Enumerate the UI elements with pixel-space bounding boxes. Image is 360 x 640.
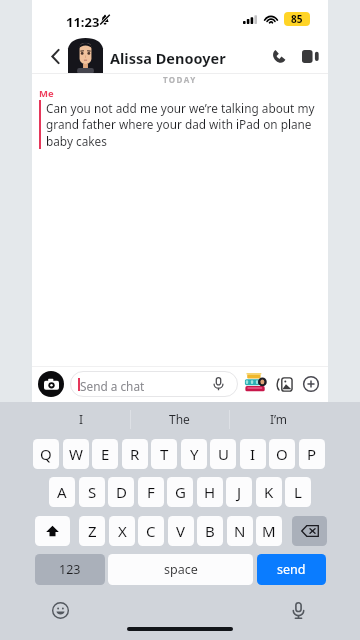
staticText: 123 [59,561,81,578]
staticText: V [176,521,186,541]
staticText: O [276,444,288,464]
staticText: R [130,444,140,464]
button[interactable]: I [240,439,266,469]
button[interactable]: Y [181,439,207,469]
staticText: send [277,561,306,578]
button[interactable]: C [138,516,164,546]
button[interactable]: Q [33,439,59,469]
staticText: Z [88,521,97,541]
staticText: C [146,521,156,541]
staticText: TODAY [163,74,197,85]
staticText: Me [39,87,54,100]
staticText: A [57,482,67,502]
staticText: B [205,521,215,541]
button[interactable]: W [63,439,89,469]
button[interactable]: send [257,554,326,585]
button[interactable]: Back [40,41,70,71]
staticText: space [164,561,198,578]
button[interactable]: I [32,402,130,436]
staticText: I’m [270,411,288,427]
button[interactable]: G [167,477,193,507]
staticText: D [116,482,127,502]
staticText: J [237,482,242,502]
button[interactable]: B [197,516,223,546]
button[interactable]: Emoji keyboard [46,596,74,624]
button[interactable]: I’m [229,402,328,436]
button[interactable]: O [269,439,295,469]
button[interactable]: More options [298,371,324,397]
staticText: S [88,482,97,502]
button[interactable]: space [108,554,253,585]
button[interactable]: J [226,477,252,507]
staticText: Y [190,444,199,464]
button[interactable]: X [109,516,135,546]
button[interactable]: 123 [35,554,105,585]
button[interactable]: S [79,477,105,507]
button[interactable]: M [256,516,282,546]
staticText: Send a chat [80,378,145,394]
staticText: 11:23 [66,13,100,31]
staticText: T [160,444,169,464]
button[interactable]: Send a chat [70,371,238,397]
staticText: F [147,482,155,502]
staticText: N [234,521,246,541]
button[interactable]: L [285,477,311,507]
button[interactable]: U [210,439,236,469]
button[interactable]: P [299,439,325,469]
staticText: I [250,444,256,464]
button[interactable]: T [151,439,177,469]
staticText: H [204,482,216,502]
button[interactable]: Bitmoji sticker [244,372,267,394]
staticText: 85 [291,12,303,26]
button[interactable]: F [138,477,164,507]
staticText: E [101,444,110,464]
button[interactable]: Backspace [292,516,327,546]
staticText: I [79,411,84,427]
button[interactable]: N [227,516,253,546]
staticText: U [218,444,229,464]
button[interactable]: E [92,439,118,469]
staticText: The [169,411,190,427]
button[interactable]: R [122,439,148,469]
button[interactable]: Z [79,516,105,546]
button[interactable]: H [197,477,223,507]
button[interactable]: Shift [35,516,70,546]
button[interactable]: K [256,477,282,507]
staticText: P [307,444,317,464]
button[interactable]: Camera [38,371,64,397]
button[interactable]: D [108,477,134,507]
staticText: L [294,482,302,502]
staticText: G [175,482,186,502]
staticText: X [118,521,127,541]
button[interactable]: A [49,477,75,507]
button[interactable]: Video call [296,42,324,70]
button[interactable]: Dictation [284,596,312,624]
button[interactable]: The [130,402,229,436]
button[interactable]: Stickers [272,371,298,397]
staticText: K [264,482,274,502]
staticText: Can you not add me your we’re talking ab… [46,100,318,150]
staticText: Alissa Denooyer [110,48,226,68]
staticText: Q [40,444,52,464]
staticText: W [69,444,83,464]
staticText: M [262,521,276,541]
button[interactable]: Voice call [264,42,292,70]
button[interactable]: V [168,516,194,546]
